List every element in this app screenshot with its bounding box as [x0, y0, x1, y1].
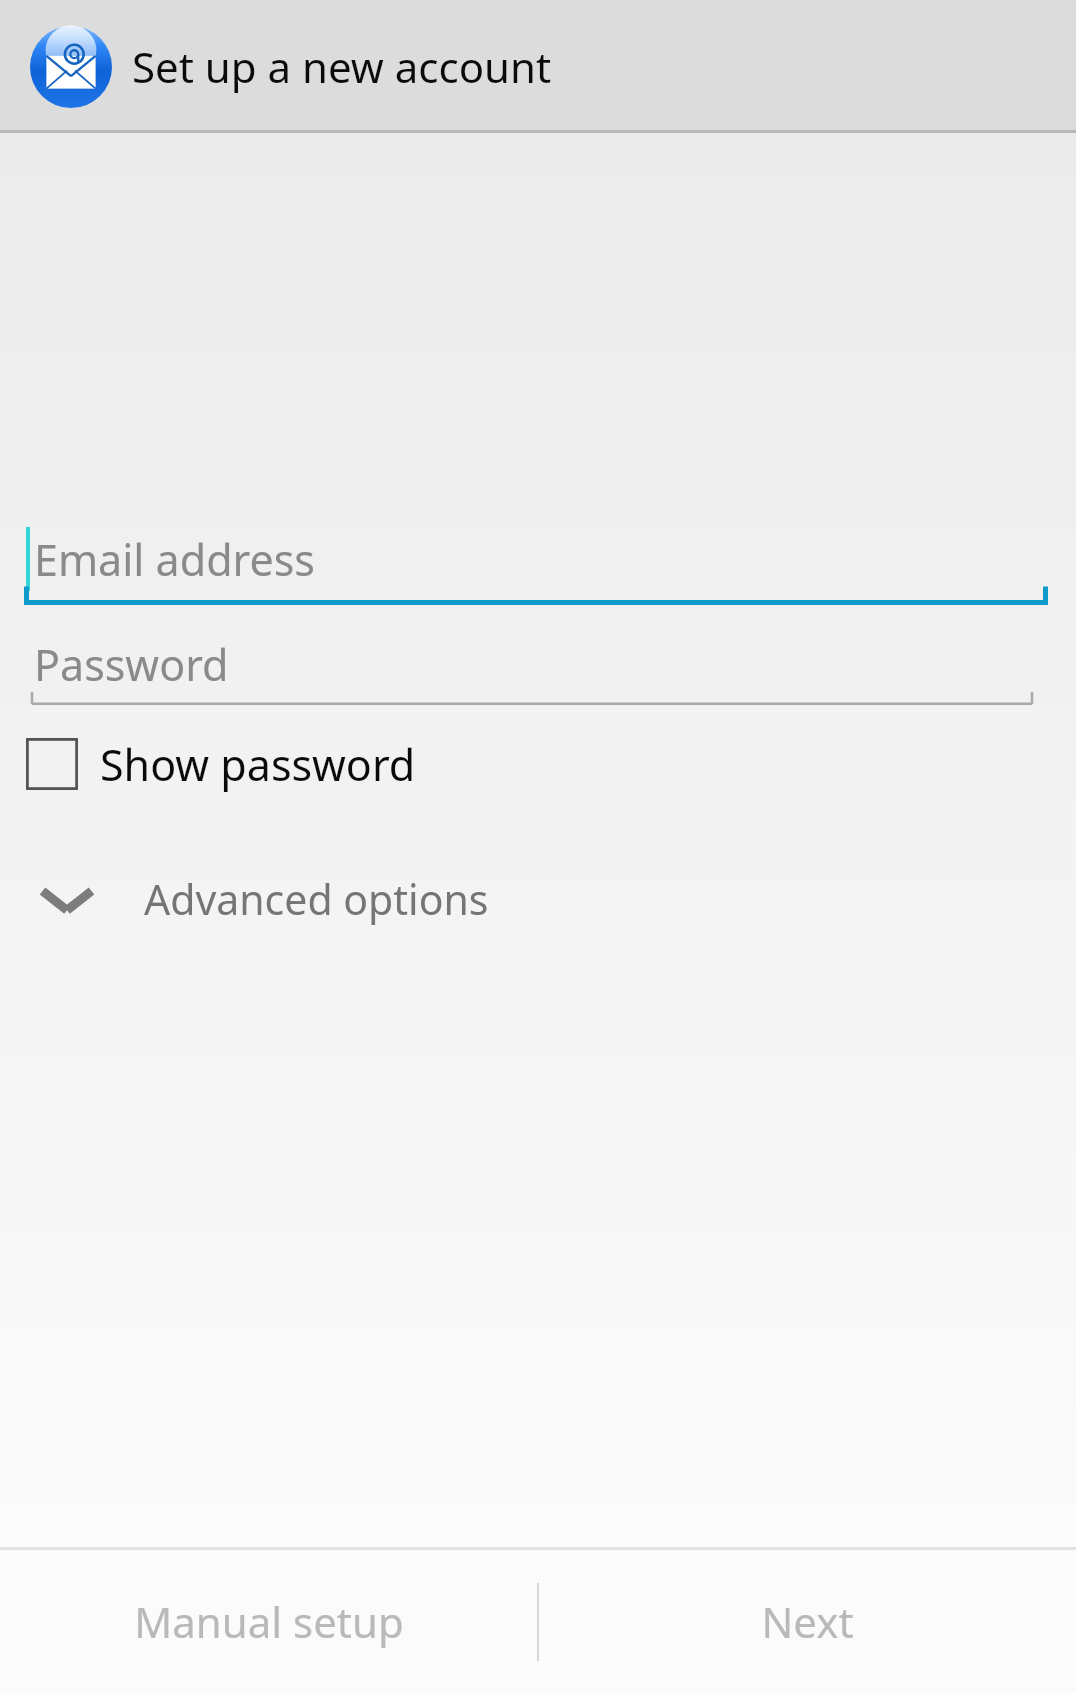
staticText: Next — [761, 1593, 854, 1650]
staticText: Email address — [34, 530, 315, 589]
button[interactable]: Show password — [26, 721, 416, 807]
staticText: Manual setup — [134, 1593, 404, 1650]
button[interactable]: Advanced options — [0, 853, 1076, 945]
staticText: Password — [34, 635, 229, 694]
button[interactable]: Password — [0, 623, 1076, 705]
staticText: Show password — [100, 735, 416, 794]
button[interactable]: Email address — [0, 513, 1076, 605]
button[interactable]: Manual setup — [0, 1550, 537, 1693]
staticText: Advanced options — [144, 871, 489, 927]
button[interactable]: Next — [539, 1550, 1076, 1693]
staticText: Set up a new account — [132, 38, 552, 95]
other: Email app icon — [30, 26, 112, 108]
